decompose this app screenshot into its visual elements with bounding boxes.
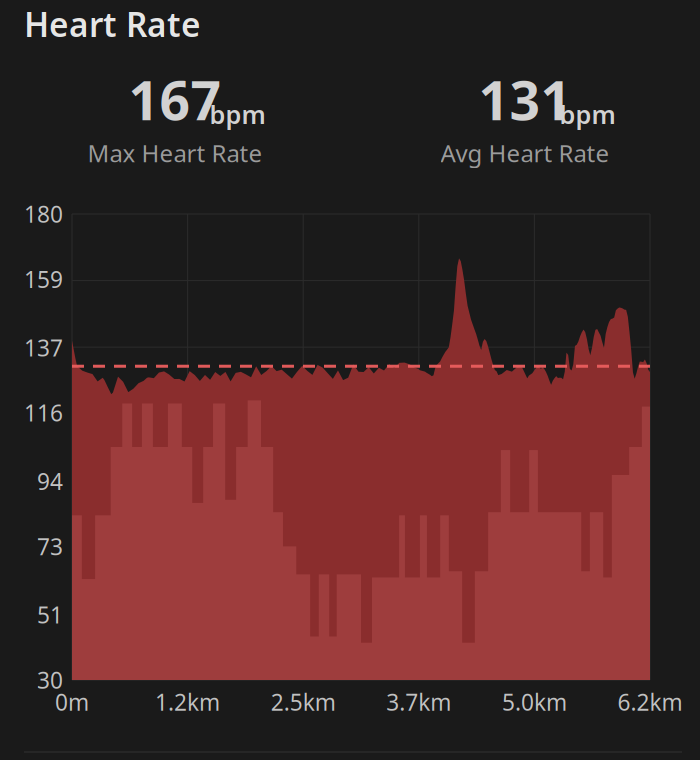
staticText: 2.5km [271, 687, 336, 717]
staticText: Avg Heart Rate [440, 137, 609, 169]
staticText: 94 [37, 466, 63, 496]
staticText: 1.2km [155, 687, 220, 717]
staticText: Max Heart Rate [87, 137, 262, 169]
staticText: 131 [478, 64, 571, 135]
staticText: 3.7km [386, 687, 451, 717]
staticText: 137 [24, 332, 63, 363]
staticText: 0m [55, 687, 89, 717]
staticText: 180 [24, 199, 63, 229]
staticText: 116 [24, 398, 63, 428]
staticText: 51 [37, 600, 63, 630]
staticText: bpm [559, 97, 615, 131]
staticText: 5.0km [502, 687, 567, 717]
staticText: 159 [24, 264, 63, 294]
staticText: 73 [37, 531, 63, 561]
staticText: 167 [128, 64, 221, 135]
staticText: Heart Rate [24, 2, 201, 46]
staticText: bpm [209, 97, 265, 131]
staticText: 30 [37, 665, 63, 695]
staticText: 6.2km [617, 687, 682, 717]
